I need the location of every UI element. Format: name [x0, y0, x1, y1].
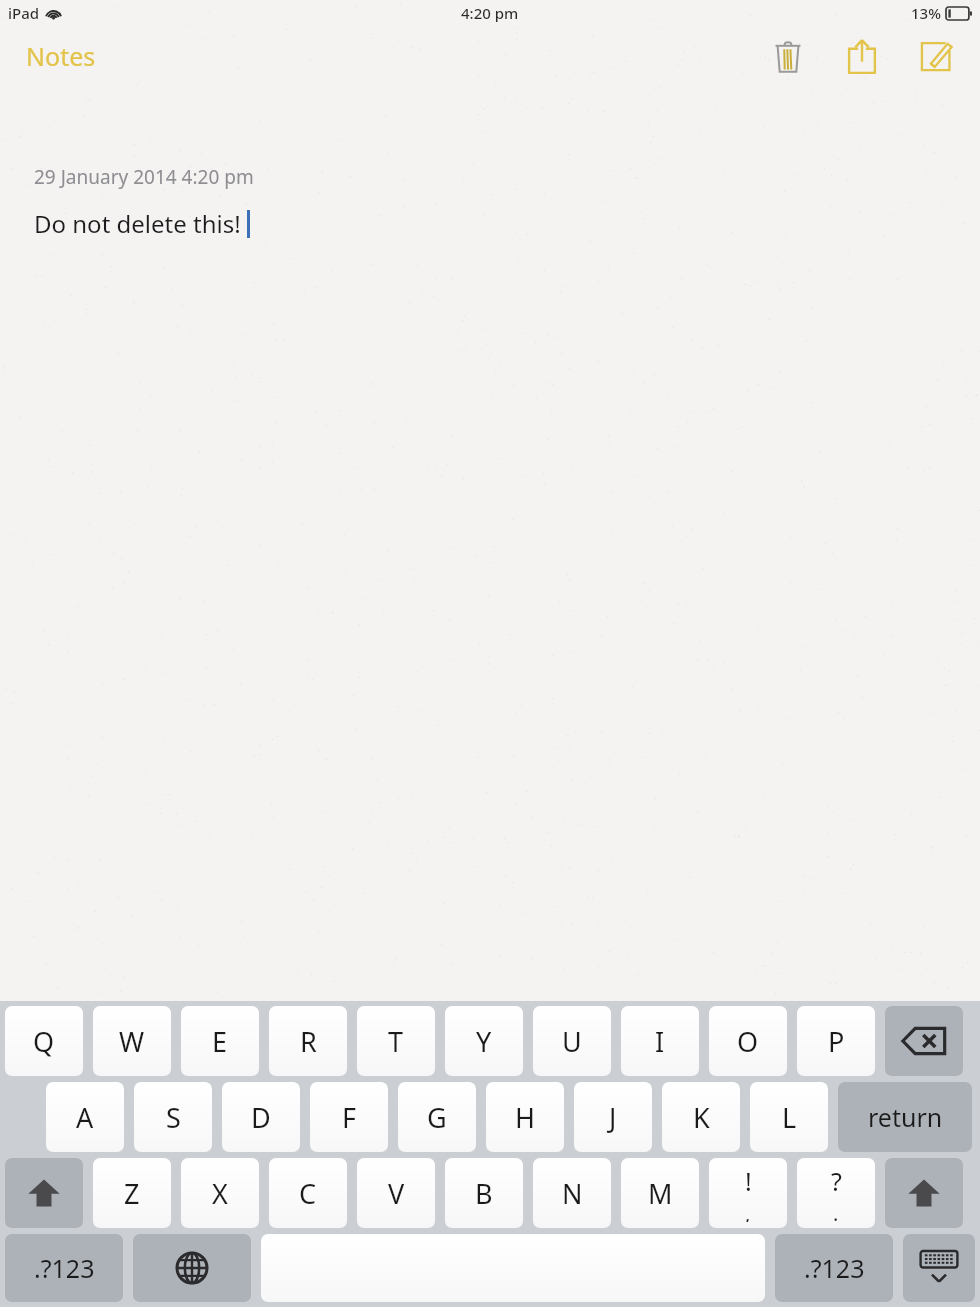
button[interactable]: L: [750, 1082, 828, 1152]
staticText: N: [562, 1175, 583, 1212]
button[interactable]: Share: [840, 34, 884, 78]
staticText: Y: [476, 1023, 492, 1060]
staticText: ?: [831, 1164, 842, 1198]
button[interactable]: M: [621, 1158, 699, 1228]
staticText: .: [833, 1200, 839, 1222]
button[interactable]: Y: [445, 1006, 523, 1076]
staticText: Q: [33, 1023, 55, 1060]
button[interactable]: E: [181, 1006, 259, 1076]
staticText: T: [388, 1023, 404, 1060]
staticText: Z: [124, 1175, 140, 1212]
staticText: K: [693, 1099, 710, 1136]
button[interactable]: S: [134, 1082, 212, 1152]
staticText: .?123: [34, 1251, 95, 1285]
button[interactable]: N: [533, 1158, 611, 1228]
staticText: D: [251, 1099, 271, 1136]
button[interactable]: B: [445, 1158, 523, 1228]
staticText: S: [166, 1099, 181, 1136]
staticText: W: [119, 1023, 145, 1060]
staticText: O: [737, 1023, 759, 1060]
staticText: V: [388, 1175, 405, 1212]
staticText: !: [745, 1164, 752, 1198]
staticText: G: [427, 1099, 447, 1136]
button[interactable]: !: [709, 1158, 787, 1228]
staticText: B: [475, 1175, 493, 1212]
button[interactable]: Q: [5, 1006, 83, 1076]
button[interactable]: X: [181, 1158, 259, 1228]
staticText: I: [655, 1023, 665, 1060]
button[interactable]: Hide keyboard: [903, 1234, 975, 1302]
staticText: Do not delete this!: [34, 207, 241, 240]
staticText: E: [212, 1023, 228, 1060]
button[interactable]: .?123: [775, 1234, 893, 1302]
button[interactable]: Z: [93, 1158, 171, 1228]
button[interactable]: K: [662, 1082, 740, 1152]
button[interactable]: Change keyboard: [133, 1234, 251, 1302]
staticText: 4:20 pm: [461, 3, 519, 23]
button[interactable]: D: [222, 1082, 300, 1152]
staticText: U: [562, 1023, 582, 1060]
staticText: 13%: [911, 3, 941, 23]
staticText: M: [648, 1175, 673, 1212]
button[interactable]: W: [93, 1006, 171, 1076]
button[interactable]: I: [621, 1006, 699, 1076]
staticText: iPad: [8, 3, 40, 23]
button[interactable]: P: [797, 1006, 875, 1076]
button[interactable]: H: [486, 1082, 564, 1152]
button[interactable]: Notes: [20, 33, 102, 79]
button[interactable]: A: [46, 1082, 124, 1152]
button[interactable]: T: [357, 1006, 435, 1076]
staticText: J: [609, 1099, 617, 1136]
button[interactable]: return: [838, 1082, 972, 1152]
staticText: Notes: [26, 39, 96, 73]
button[interactable]: .?123: [5, 1234, 123, 1302]
button[interactable]: F: [310, 1082, 388, 1152]
button[interactable]: New note: [914, 34, 958, 78]
staticText: 29 January 2014 4:20 pm: [34, 164, 254, 190]
button[interactable]: R: [269, 1006, 347, 1076]
button[interactable]: C: [269, 1158, 347, 1228]
button[interactable]: V: [357, 1158, 435, 1228]
staticText: return: [868, 1100, 943, 1134]
staticText: P: [828, 1023, 845, 1060]
button[interactable]: G: [398, 1082, 476, 1152]
staticText: ,: [745, 1200, 751, 1222]
button[interactable]: J: [574, 1082, 652, 1152]
button[interactable]: O: [709, 1006, 787, 1076]
staticText: .?123: [804, 1251, 865, 1285]
button[interactable]: Delete: [766, 34, 810, 78]
button[interactable]: Shift: [885, 1158, 963, 1228]
button[interactable]: Backspace: [885, 1006, 963, 1076]
staticText: F: [342, 1099, 357, 1136]
staticText: A: [76, 1099, 94, 1136]
staticText: R: [300, 1023, 317, 1060]
staticText: H: [515, 1099, 536, 1136]
button[interactable]: Shift: [5, 1158, 83, 1228]
staticText: X: [212, 1175, 228, 1212]
staticText: C: [299, 1175, 317, 1212]
staticText: L: [782, 1099, 797, 1136]
button[interactable]: U: [533, 1006, 611, 1076]
button[interactable]: ?: [797, 1158, 875, 1228]
